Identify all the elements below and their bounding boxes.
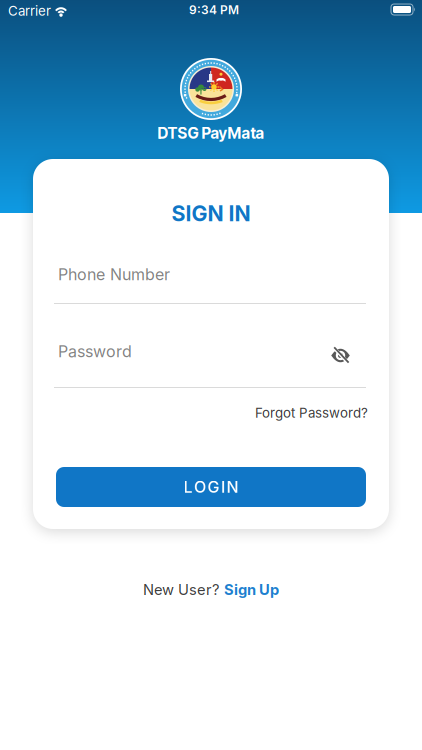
button[interactable]: LOGIN bbox=[56, 467, 366, 507]
staticText: Carrier bbox=[8, 3, 51, 19]
staticText: Forgot Password? bbox=[255, 405, 368, 421]
staticText: LOGIN bbox=[183, 478, 238, 496]
button[interactable]: Sign Up bbox=[224, 581, 279, 598]
staticText: Phone Number bbox=[58, 265, 170, 284]
staticText: Sign Up bbox=[224, 581, 279, 598]
staticText: SIGN IN bbox=[171, 201, 250, 226]
staticText: New User? bbox=[143, 581, 219, 598]
staticText: Password bbox=[58, 342, 132, 361]
staticText: 9:34 PM bbox=[189, 3, 239, 17]
button[interactable]: Show password bbox=[331, 347, 350, 364]
staticText: DTSG PayMata bbox=[157, 124, 264, 142]
button[interactable]: Forgot Password? bbox=[255, 405, 368, 421]
